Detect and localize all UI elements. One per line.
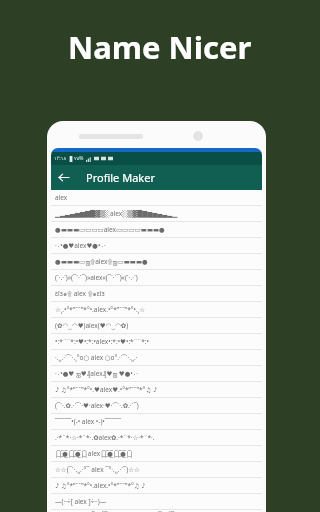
- button[interactable]: ♪ ♫°*”˜˜”*°•.alex.•°*”˜˜”*°♫ ♪: [51, 478, 262, 493]
- button[interactable]: ☆.•*´¨`*•.☆(¯`·.¸°¯ alex☆.•*´¨`*•.☆(¯`·.…: [51, 510, 262, 512]
- button[interactable]: ●▬▬▬▭▭▭▭alex▭▭▭▭▬▬▬●: [51, 222, 262, 237]
- button[interactable]: εїз๑۩ alex ۩๑εїз: [51, 286, 262, 301]
- staticText: —(··÷[ alex ]÷··)—: [55, 497, 107, 506]
- staticText: (¯`·.✿.·´¯`·♥·alex·♥·´¯`·.✿.·´¯): [55, 401, 139, 410]
- button[interactable]: |̲̅|̲̅●̲̅|̲̅|̲̅●̲̅|̲̅|alex|̲̅|̲̅●̲̅|̲̅|̲…: [51, 446, 262, 461]
- button[interactable]: ·٠•●♥ ஐ♥₰alex₰♥ஐ ♥●•٠·: [51, 366, 262, 381]
- staticText: .·*¨*·☆·*¨*·.✿alex✿.·*¨*·☆·*¨*·.: [55, 433, 155, 442]
- staticText: (`·.·´)»(¯`·´¯)»alex«(¯`·´¯)«(`·.·´): [55, 273, 138, 282]
- staticText: Name Nicer: [68, 26, 252, 68]
- button[interactable]: .·*¨*·☆·*¨*·.✿alex✿.·*¨*·☆·*¨*·.: [51, 430, 262, 445]
- staticText: ☆¸.•°*”˜˜”*°•.alex.•°*”˜˜”*°•.¸☆: [55, 305, 146, 314]
- staticText: ♪ ♫°*”˜˜”*°•.♥alex♥.•°*”˜˜”*°♫ ♪: [55, 385, 158, 394]
- button[interactable]: Back: [51, 165, 76, 190]
- button[interactable]: ·٠•●♥alex♥●•٠·: [51, 238, 262, 253]
- button[interactable]: (`·.·´)»(¯`·´¯)»alex«(¯`·´¯)«(`·.·´): [51, 270, 262, 285]
- staticText: ●▬▬▬▭ஐ۩alex۩ஐ▭▬▬▬●: [55, 257, 148, 266]
- staticText: ·.¸¸.·´¯`·.¸°o○ alex ○o°.·´¯`·.¸¸.·: [55, 353, 138, 362]
- staticText: ·٠•●♥alex♥●•٠·: [55, 241, 106, 250]
- button[interactable]: ▁▂▃▄▅▆▇█▓▒░alex░▒▓█▇▆▅▄▃▂▁: [51, 206, 262, 221]
- button[interactable]: ☆☆(¯`·.¸¸.·°¯ alex ¯°·.¸¸.·´¯)☆☆: [51, 462, 262, 477]
- staticText: ۱۲:۱۸: [54, 155, 67, 162]
- staticText: alex: [55, 193, 68, 202]
- button[interactable]: •:*¨¨*:•♥•:*:•alex•:*:•♥•:*¨¨*:•: [51, 334, 262, 349]
- button[interactable]: —(··÷[ alex ]÷··)—: [51, 494, 262, 509]
- button[interactable]: ·.¸¸.·´¯`·.¸°o○ alex ○o°.·´¯`·.¸¸.·: [51, 350, 262, 365]
- staticText: ●▬▬▬▭▭▭▭alex▭▭▭▭▬▬▬●: [55, 225, 165, 234]
- staticText: ۷۵%: [74, 155, 84, 162]
- button[interactable]: ☆¸.•°*”˜˜”*°•.alex.•°*”˜˜”*°•.¸☆: [51, 302, 262, 317]
- button[interactable]: ♪ ♫°*”˜˜”*°•.♥alex♥.•°*”˜˜”*°♫ ♪: [51, 382, 262, 397]
- staticText: ♪ ♫°*”˜˜”*°•.alex.•°*”˜˜”*°♫ ♪: [55, 481, 146, 490]
- staticText: ☆.•*´¨`*•.☆(¯`·.¸°¯ alex☆.•*´¨`*•.☆(¯`·.…: [55, 510, 175, 512]
- staticText: (✿◠‿◠♥)alex(♥◠‿◠✿): [55, 321, 129, 330]
- staticText: εїз๑۩ alex ۩๑εїз: [55, 289, 105, 299]
- button[interactable]: alex: [51, 190, 262, 205]
- staticText: •:*¨¨*:•♥•:*:•alex•:*:•♥•:*¨¨*:•: [55, 337, 150, 346]
- button[interactable]: (✿◠‿◠♥)alex(♥◠‿◠✿): [51, 318, 262, 333]
- staticText: ·٠•●♥ ஐ♥₰alex₰♥ஐ ♥●•٠·: [55, 369, 139, 378]
- button[interactable]: ¯¯¯¯¯•(-• alex •-)•¯¯¯¯¯: [51, 414, 262, 429]
- staticText: |̲̅|̲̅●̲̅|̲̅|̲̅●̲̅|̲̅|alex|̲̅|̲̅●̲̅|̲̅|̲…: [55, 449, 133, 458]
- staticText: ☆☆(¯`·.¸¸.·°¯ alex ¯°·.¸¸.·´¯)☆☆: [55, 465, 140, 474]
- staticText: ¯¯¯¯¯•(-• alex •-)•¯¯¯¯¯: [55, 417, 122, 426]
- button[interactable]: ●▬▬▬▭ஐ۩alex۩ஐ▭▬▬▬●: [51, 254, 262, 269]
- staticText: ▁▂▃▄▅▆▇█▓▒░alex░▒▓█▇▆▅▄▃▂▁: [55, 209, 178, 218]
- staticText: Profile Maker: [86, 170, 155, 185]
- button[interactable]: (¯`·.✿.·´¯`·♥·alex·♥·´¯`·.✿.·´¯): [51, 398, 262, 413]
